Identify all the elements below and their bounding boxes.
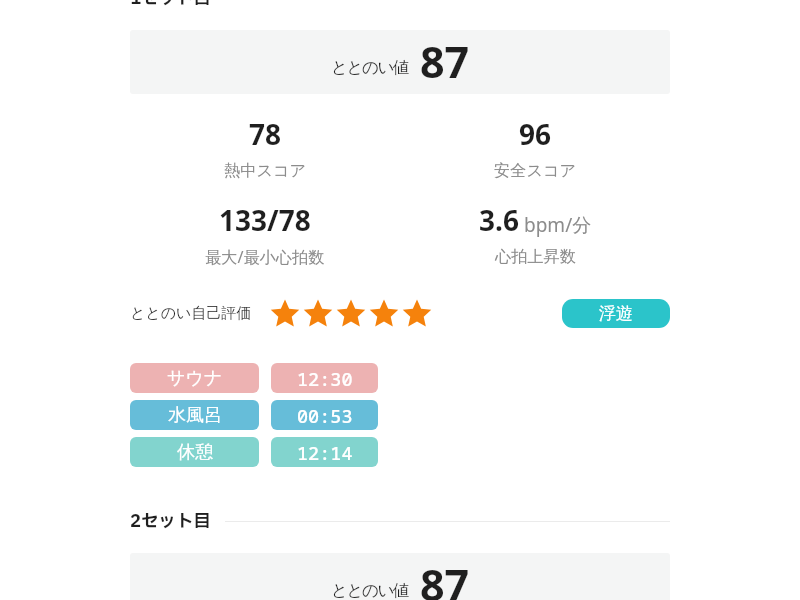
button[interactable]: 12:14 bbox=[271, 437, 378, 467]
button[interactable]: 00:53 bbox=[271, 400, 378, 430]
button[interactable]: 水風呂 bbox=[130, 400, 259, 430]
staticText: 休憩 bbox=[177, 441, 213, 464]
staticText: 12:14 bbox=[297, 440, 353, 465]
staticText: 2セット目 bbox=[130, 508, 212, 534]
staticText: 87 bbox=[420, 555, 470, 600]
staticText: 96 bbox=[519, 115, 552, 153]
staticText: 00:53 bbox=[297, 403, 353, 428]
staticText: 浮遊 bbox=[599, 303, 633, 324]
button[interactable]: 休憩 bbox=[130, 437, 259, 467]
staticText: ととのい自己評価 bbox=[130, 304, 252, 323]
button[interactable]: ととのい値 bbox=[130, 30, 670, 94]
staticText: 最大/最小心拍数 bbox=[205, 246, 325, 268]
staticText: 水風呂 bbox=[168, 404, 222, 427]
staticText: 心拍上昇数 bbox=[495, 246, 576, 266]
staticText: 3.6 bbox=[479, 201, 519, 239]
staticText: 133/78 bbox=[219, 201, 311, 239]
staticText: ととのい値 bbox=[331, 57, 409, 78]
staticText: 1セット目 bbox=[130, 0, 212, 11]
staticText: 87 bbox=[420, 32, 470, 91]
staticText: 12:30 bbox=[297, 366, 353, 391]
button[interactable]: 浮遊 bbox=[562, 299, 670, 328]
staticText: 熱中スコア bbox=[224, 160, 307, 180]
staticText: 78 bbox=[249, 115, 282, 153]
staticText: ととのい値 bbox=[331, 580, 409, 600]
staticText: 安全スコア bbox=[494, 160, 577, 180]
staticText: bpm/分 bbox=[524, 212, 592, 238]
button[interactable]: ととのい値 bbox=[130, 553, 670, 600]
staticText: サウナ bbox=[167, 367, 223, 390]
button[interactable]: サウナ bbox=[130, 363, 259, 393]
button[interactable]: 12:30 bbox=[271, 363, 378, 393]
